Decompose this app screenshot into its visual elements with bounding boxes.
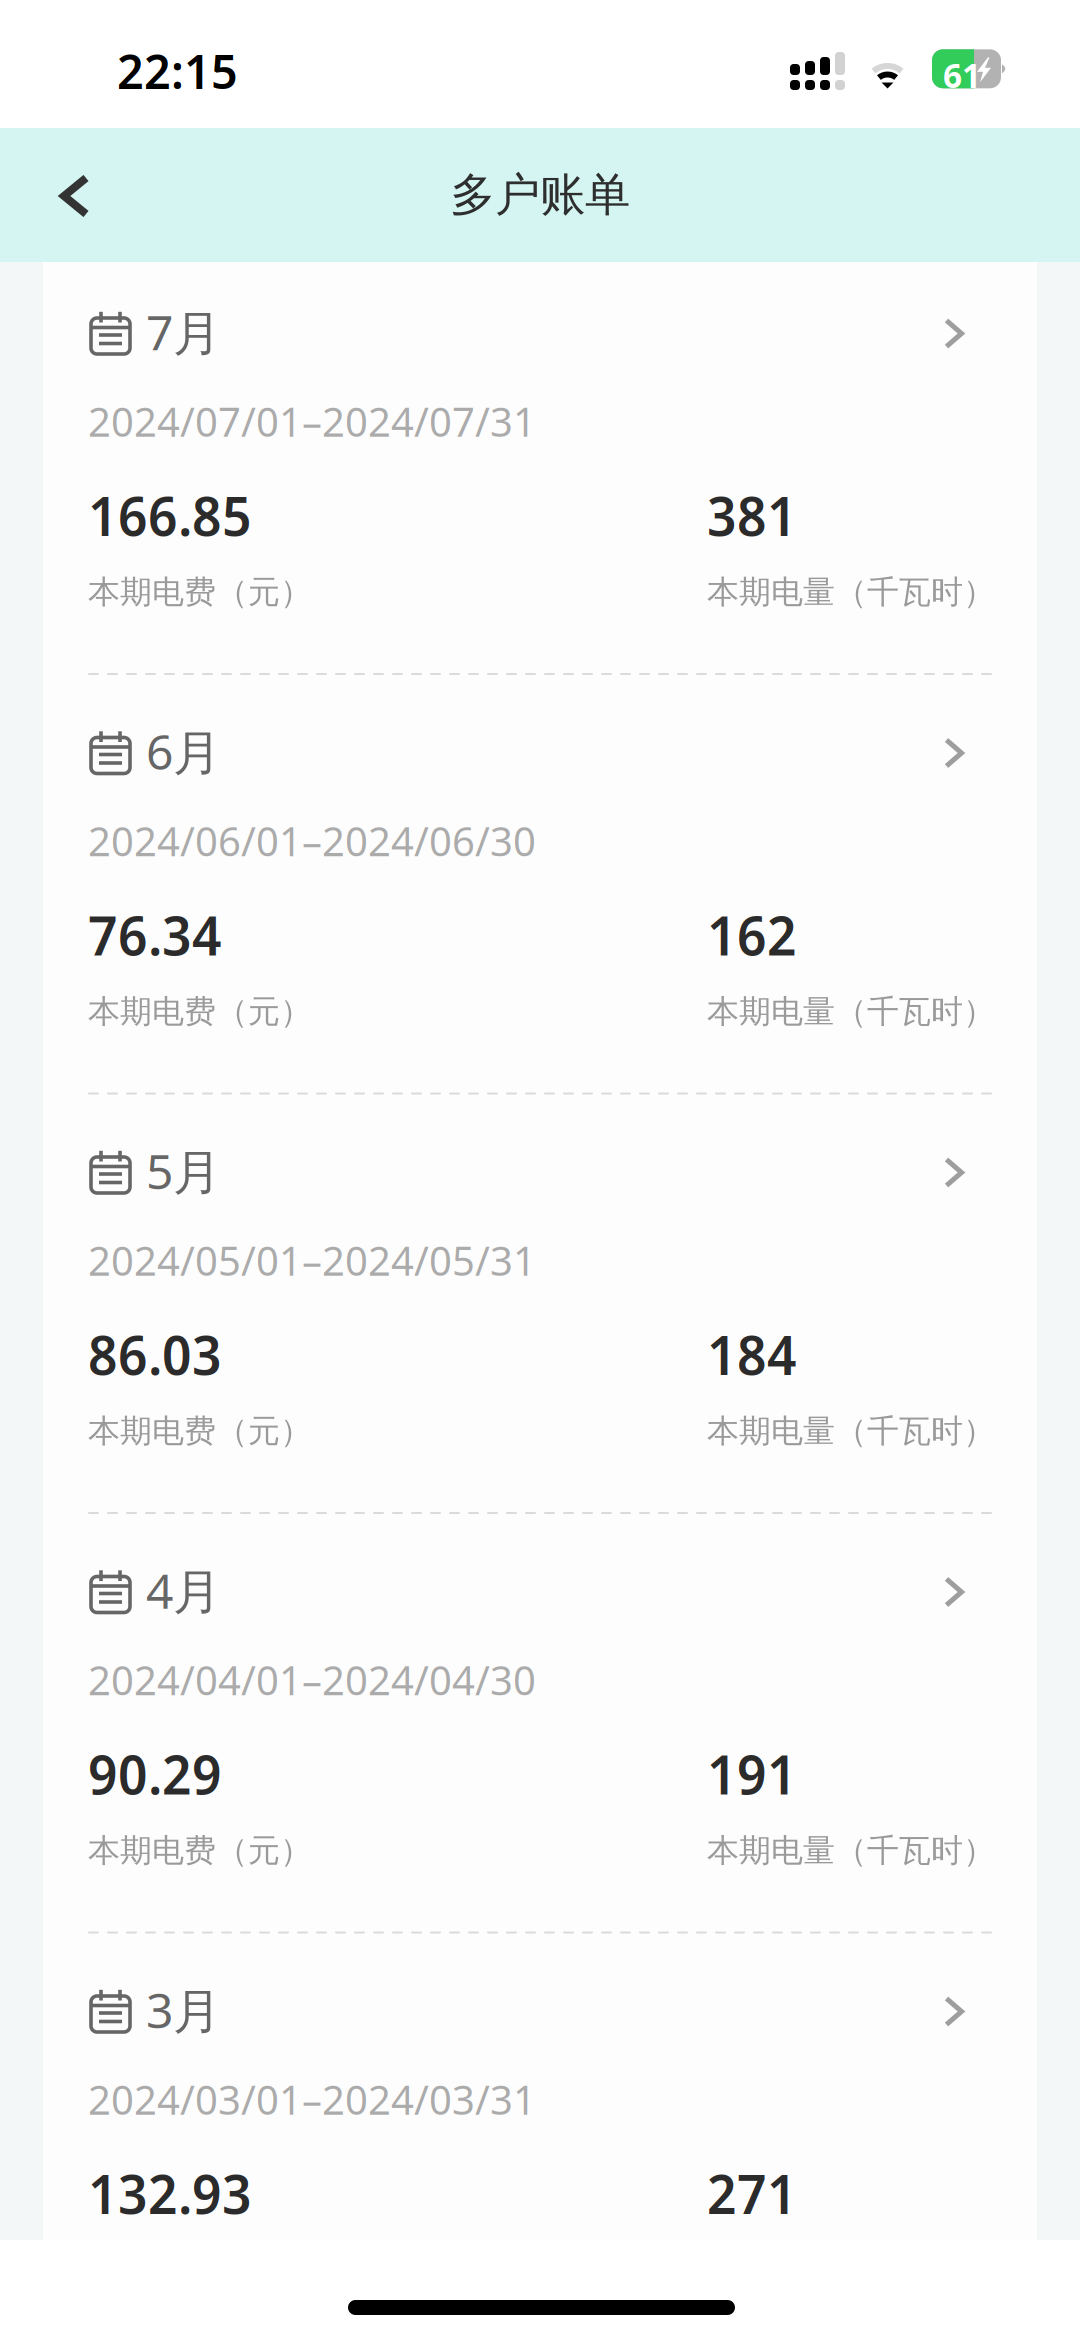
staticText: 6月 (146, 718, 221, 784)
staticText: 3月 (146, 1977, 221, 2042)
staticText: 76.34 (88, 898, 222, 971)
staticText: 2024/03/01–2024/03/31 (88, 2072, 536, 2126)
staticText: 381 (707, 479, 797, 552)
staticText: 2024/06/01–2024/06/30 (88, 813, 536, 868)
staticText: 86.03 (88, 1318, 222, 1391)
button[interactable]: 6月 (88, 732, 1037, 802)
staticText: 166.85 (88, 479, 252, 552)
button[interactable]: Back (0, 128, 140, 262)
button[interactable]: 4月 (88, 1571, 1037, 1641)
staticText: 多户账单 (450, 166, 630, 223)
staticText: 162 (707, 898, 797, 971)
staticText: 61 (943, 52, 981, 98)
staticText: 本期电量（千瓦时） (707, 1411, 995, 1451)
staticText: 本期电量（千瓦时） (707, 991, 995, 1032)
staticText: 本期电量（千瓦时） (707, 1830, 995, 1871)
staticText: 184 (707, 1318, 797, 1391)
staticText: 5月 (146, 1138, 221, 1203)
staticText: 本期电费（元） (88, 1830, 312, 1871)
staticText: 2024/05/01–2024/05/31 (88, 1233, 536, 1287)
staticText: 本期电费（元） (88, 991, 312, 1032)
staticText: 4月 (146, 1557, 221, 1623)
staticText: 2024/07/01–2024/07/31 (88, 394, 536, 448)
button[interactable]: 3月 (88, 1991, 1037, 2061)
staticText: 191 (707, 1737, 797, 1810)
staticText: 本期电量（千瓦时） (707, 572, 995, 612)
staticText: 2024/04/01–2024/04/30 (88, 1652, 536, 1707)
staticText: 90.29 (88, 1737, 222, 1810)
staticText: 22:15 (117, 39, 238, 103)
staticText: 132.93 (88, 2157, 252, 2230)
button[interactable]: 5月 (88, 1152, 1037, 1222)
staticText: 7月 (146, 299, 221, 364)
button[interactable]: 7月 (88, 313, 1037, 383)
staticText: 271 (707, 2157, 797, 2230)
staticText: 本期电费（元） (88, 572, 312, 612)
staticText: 本期电费（元） (88, 1411, 312, 1451)
